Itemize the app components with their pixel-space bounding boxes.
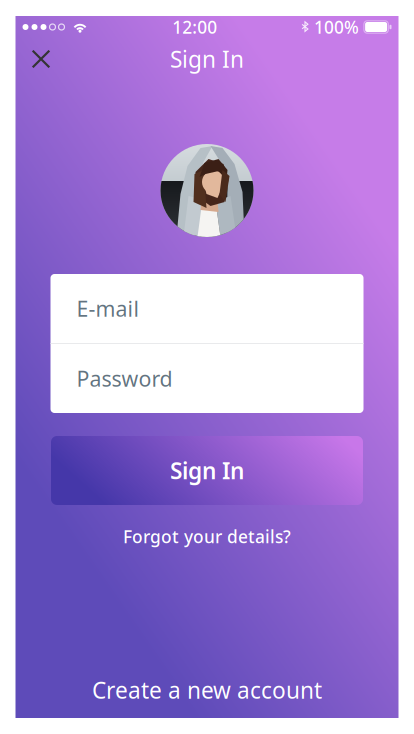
button[interactable]: Sign In: [51, 436, 363, 505]
button[interactable]: Password: [50, 344, 363, 413]
staticText: 100%: [314, 15, 359, 38]
staticText: Sign In: [170, 455, 244, 485]
button[interactable]: E-mail: [50, 274, 363, 343]
button[interactable]: Close: [15, 38, 66, 79]
staticText: Create a new account: [92, 675, 322, 705]
button[interactable]: Create a new account: [15, 662, 398, 718]
button[interactable]: Forgot your details?: [103, 517, 311, 556]
staticText: Forgot your details?: [123, 525, 291, 548]
staticText: Sign In: [170, 44, 244, 74]
staticText: 12:00: [172, 15, 217, 38]
staticText: E-mail: [76, 294, 139, 323]
staticText: Password: [76, 364, 172, 393]
